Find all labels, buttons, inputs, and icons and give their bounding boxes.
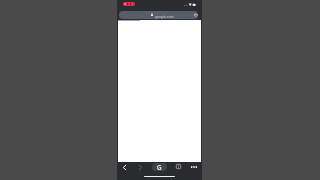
staticText: G	[157, 163, 162, 171]
button[interactable]: More options	[189, 162, 199, 172]
button[interactable]: Back	[120, 163, 129, 172]
button[interactable]: Screen recording	[123, 2, 135, 6]
button[interactable]: Search	[152, 163, 167, 171]
other: Status icons	[183, 3, 199, 7]
button[interactable]: Forward	[136, 163, 145, 172]
button[interactable]: google.com	[119, 11, 198, 19]
button[interactable]: Tabs	[174, 162, 183, 171]
other: Search with camera	[194, 13, 198, 17]
staticText: google.com	[155, 14, 174, 18]
